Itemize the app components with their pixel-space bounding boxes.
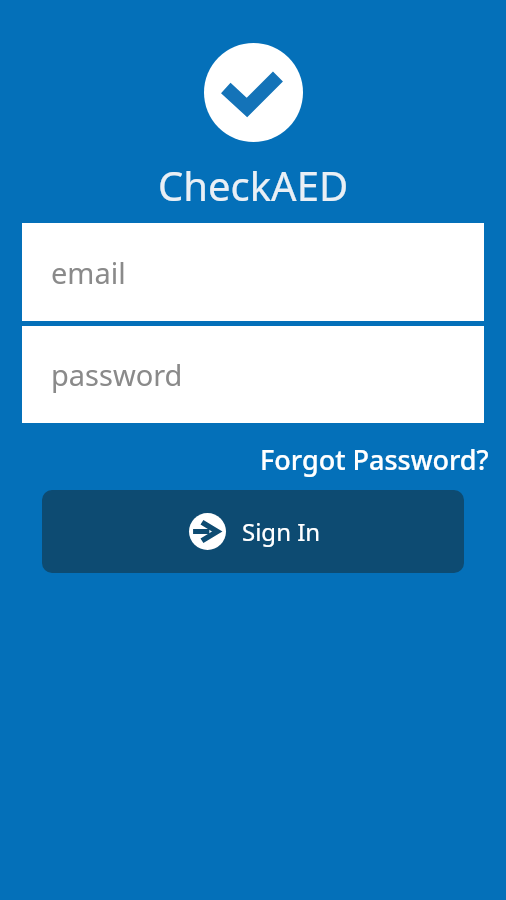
staticText: password: [51, 355, 183, 394]
button[interactable]: Forgot Password?: [260, 441, 489, 478]
button[interactable]: password: [22, 326, 484, 423]
button[interactable]: email: [22, 223, 484, 321]
button[interactable]: Sign In: [42, 490, 464, 573]
staticText: email: [51, 253, 126, 292]
staticText: Sign In: [242, 515, 321, 548]
staticText: CheckAED: [158, 158, 349, 212]
